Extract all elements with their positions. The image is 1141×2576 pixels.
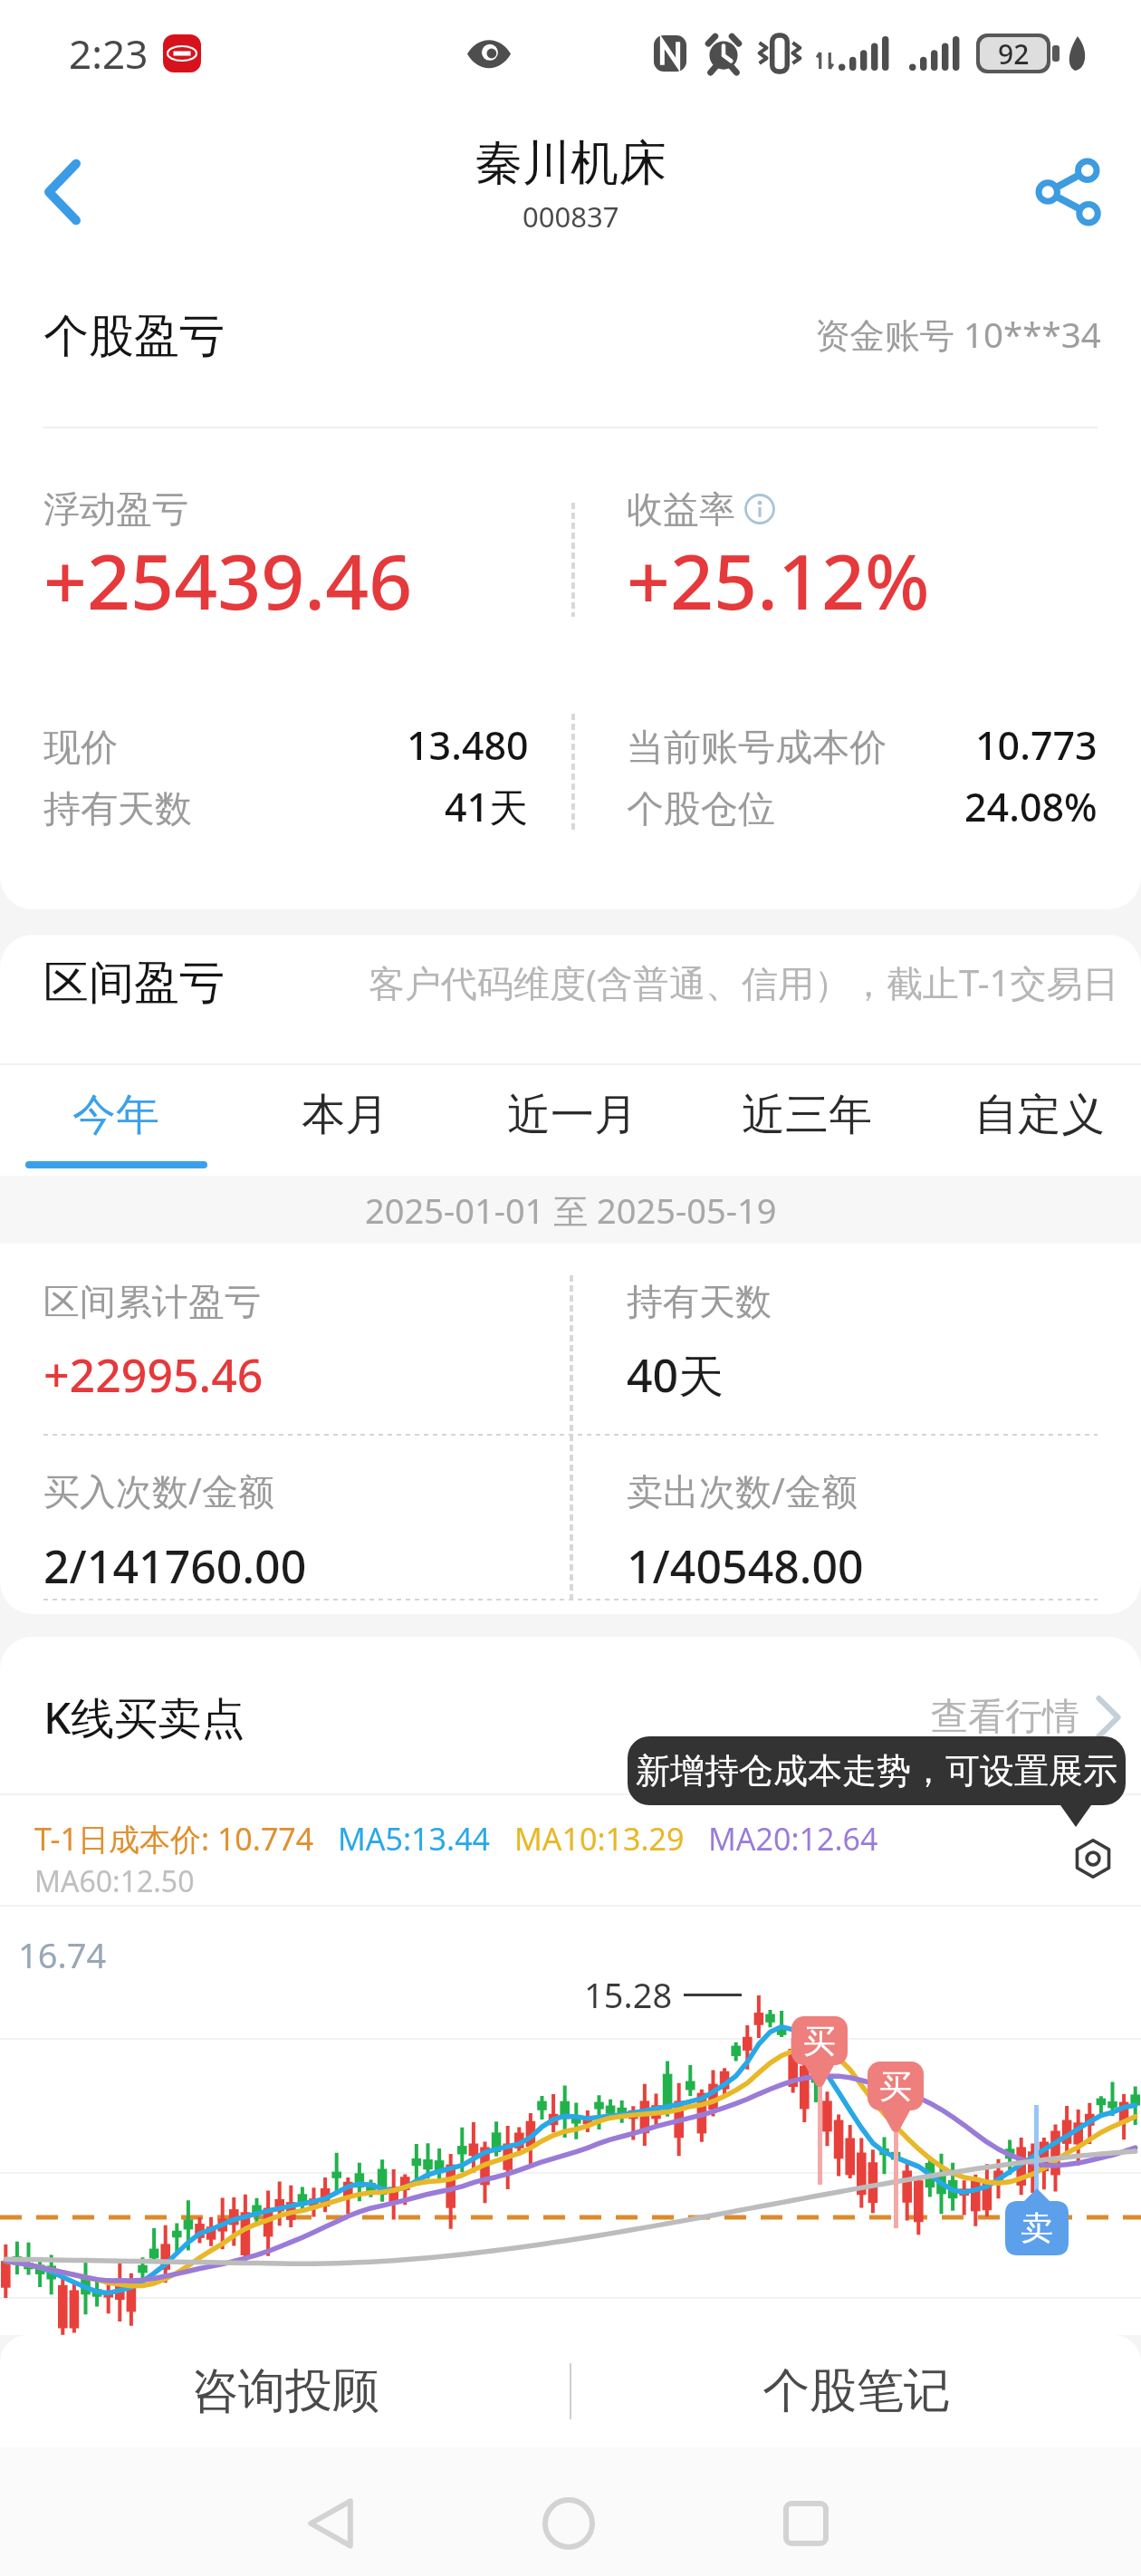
staticText: K线买卖点 <box>43 1687 245 1747</box>
staticText: 近一月 <box>507 1088 638 1142</box>
staticText: 新增持仓成本走势，可设置展示 <box>636 1749 1117 1793</box>
staticText: 买入次数/金额 <box>43 1466 274 1515</box>
staticText: 卖 <box>1021 2207 1053 2248</box>
staticText: 卖出次数/金额 <box>627 1466 858 1515</box>
staticText: 当前账号成本价 <box>627 725 887 772</box>
button[interactable]: Recents <box>752 2469 860 2576</box>
button[interactable]: 自定义 <box>939 1082 1140 1200</box>
staticText: 41天 <box>445 780 529 833</box>
button[interactable]: 近一月 <box>472 1082 673 1200</box>
staticText: 收益率 <box>627 486 735 532</box>
staticText: 自定义 <box>974 1088 1105 1142</box>
staticText: MA10:13.29 <box>514 1818 685 1860</box>
staticText: 区间盈亏 <box>43 955 225 1012</box>
staticText: 92 <box>998 35 1030 72</box>
staticText: 40天 <box>627 1344 724 1406</box>
staticText: 16.74 <box>18 1931 107 1978</box>
staticText: 2025-01-01 至 2025-05-19 <box>365 1187 777 1234</box>
staticText: 资金账号 10***34 <box>815 311 1101 359</box>
button[interactable]: Home <box>514 2469 623 2576</box>
staticText: 2/141760.00 <box>43 1535 307 1597</box>
button[interactable]: 今年 <box>38 1082 194 1200</box>
staticText: MA20:12.64 <box>708 1818 878 1860</box>
staticText: 咨询投顾 <box>191 2361 379 2421</box>
staticText: 买 <box>803 2021 836 2062</box>
button[interactable]: 咨询投顾 <box>0 2335 570 2447</box>
staticText: MA60:12.50 <box>34 1861 195 1901</box>
staticText: 买 <box>879 2066 912 2107</box>
button[interactable]: Share <box>1018 142 1117 242</box>
button[interactable]: Chart settings <box>1067 1832 1119 1885</box>
staticText: 持有天数 <box>627 1279 772 1324</box>
staticText: 现价 <box>43 725 118 772</box>
button[interactable]: 本月 <box>267 1082 423 1200</box>
button[interactable]: 查看行情 <box>931 1694 1121 1741</box>
staticText: MA5:13.44 <box>338 1818 491 1860</box>
staticText: 客户代码维度(含普通、信用），截止T-1交易日 <box>369 957 1119 1007</box>
staticText: 区间累计盈亏 <box>43 1279 261 1324</box>
staticText: 1/40548.00 <box>627 1535 864 1597</box>
staticText: +25439.46 <box>43 528 413 631</box>
staticText: 000837 <box>523 197 619 235</box>
staticText: 个股笔记 <box>762 2361 951 2421</box>
staticText: +22995.46 <box>43 1344 264 1406</box>
button[interactable]: Back <box>14 142 113 242</box>
button[interactable]: Back <box>276 2469 385 2576</box>
staticText: +25.12% <box>627 528 930 631</box>
staticText: 近三年 <box>742 1088 872 1142</box>
staticText: 本月 <box>302 1088 388 1142</box>
staticText: 24.08% <box>964 780 1098 833</box>
staticText: 10.773 <box>975 718 1098 772</box>
staticText: 个股仓位 <box>627 786 775 833</box>
staticText: 持有天数 <box>43 786 192 833</box>
button[interactable]: 近三年 <box>706 1082 907 1200</box>
staticText: 2:23 <box>69 26 149 81</box>
staticText: 今年 <box>72 1088 159 1142</box>
staticText: 浮动盈亏 <box>43 486 188 532</box>
staticText: 13.480 <box>407 718 529 772</box>
button[interactable]: 个股笔记 <box>571 2335 1141 2447</box>
staticText: 秦川机床 <box>475 133 666 194</box>
staticText: 查看行情 <box>931 1694 1079 1741</box>
staticText: 个股盈亏 <box>43 308 225 365</box>
staticText: 15.28 <box>584 1971 673 2018</box>
staticText: T-1日成本价: 10.774 <box>34 1818 314 1860</box>
